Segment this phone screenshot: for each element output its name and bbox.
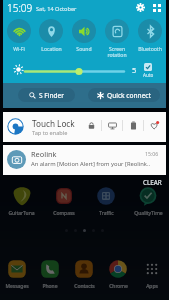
button[interactable]: Contacts	[67, 259, 101, 291]
button[interactable]: Traffic	[85, 186, 127, 218]
staticText: Apps	[146, 283, 158, 290]
staticText: 15:06	[145, 150, 159, 157]
button[interactable]: Battery	[123, 115, 143, 136]
button[interactable]: Touch Lock	[3, 112, 166, 142]
staticText: GuitarTuna	[8, 210, 35, 217]
staticText: Traffic	[99, 210, 114, 217]
staticText: Screen rotation	[107, 46, 127, 59]
button[interactable]: Bluetooth	[133, 19, 166, 59]
staticText: 5	[132, 65, 137, 75]
staticText: CLEAR	[143, 178, 162, 187]
button[interactable]: Sound	[67, 19, 100, 59]
staticText: 15:09	[7, 1, 33, 15]
staticText: Phone	[42, 283, 58, 290]
button[interactable]: Chrome	[101, 259, 135, 291]
button[interactable]: Reolink	[3, 145, 166, 175]
button[interactable]: Lock	[81, 115, 101, 136]
staticText: Contacts	[74, 283, 95, 290]
button[interactable]: Health	[144, 115, 164, 136]
staticText: Quick connect	[107, 91, 151, 100]
staticText: Wi-Fi	[13, 46, 25, 53]
staticText: QualityTime	[134, 210, 163, 217]
button[interactable]: Auto	[140, 63, 156, 78]
button[interactable]: Screen rotation	[100, 19, 133, 59]
staticText: Location	[41, 46, 62, 53]
button[interactable]: QualityTime	[127, 186, 169, 218]
button[interactable]: Wi-Fi	[3, 19, 35, 59]
button[interactable]: Apps	[135, 259, 169, 291]
button[interactable]: Phone	[33, 259, 67, 291]
button[interactable]: CLEAR	[141, 176, 164, 189]
staticText: Sound	[76, 46, 92, 53]
button[interactable]: Quick connect	[88, 88, 160, 102]
button[interactable]: Screen	[102, 115, 122, 136]
button[interactable]: Messages	[0, 259, 33, 291]
staticText: Bluetooth	[138, 46, 162, 53]
staticText: Auto	[143, 72, 154, 78]
staticText: Sat, 14 October	[36, 5, 77, 13]
staticText: Touch Lock	[32, 118, 75, 129]
staticText: Tap to enable	[32, 129, 68, 137]
button[interactable]: Edit quick settings	[150, 1, 163, 14]
staticText: Chrome	[109, 283, 128, 290]
button[interactable]: S Finder	[18, 88, 75, 102]
staticText: S Finder	[39, 91, 65, 100]
staticText: An alarm [Motion Alert] from your [Reoli…	[31, 160, 151, 168]
staticText: Compass	[53, 210, 75, 217]
button[interactable]: GuitarTuna	[0, 186, 43, 218]
staticText: Reolink	[31, 149, 57, 159]
button[interactable]: Compass	[43, 186, 85, 218]
button[interactable]: Settings	[134, 1, 147, 14]
staticText: Messages	[5, 283, 29, 290]
button[interactable]: Location	[35, 19, 67, 59]
